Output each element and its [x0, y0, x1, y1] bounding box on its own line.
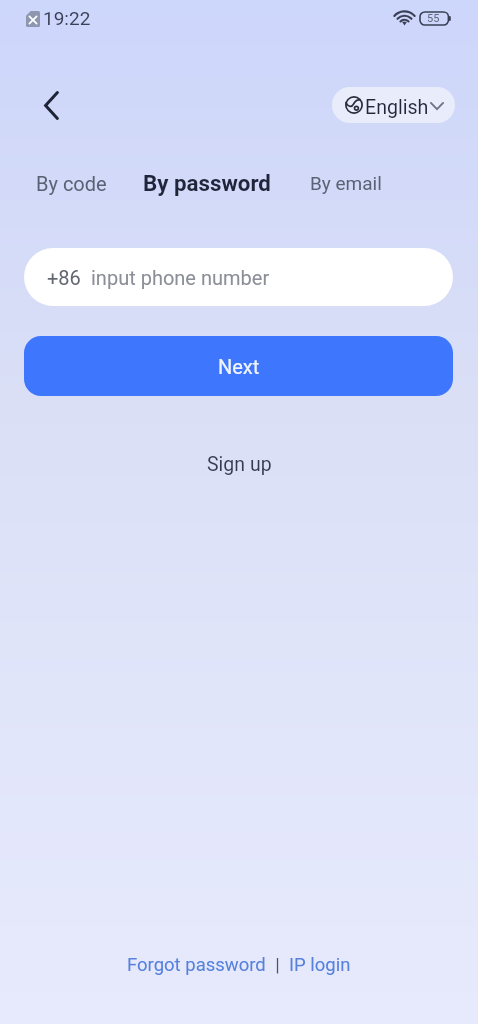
staticText: Sign up	[207, 453, 272, 476]
button[interactable]: English	[332, 87, 455, 123]
staticText: By password	[143, 170, 271, 196]
staticText: English	[365, 96, 429, 119]
button[interactable]: +86	[24, 248, 453, 306]
staticText: input phone number	[91, 266, 270, 289]
button[interactable]: IP login	[289, 954, 351, 976]
staticText: 55	[427, 12, 440, 25]
staticText: 19:22	[43, 7, 91, 29]
staticText: IP login	[289, 954, 351, 976]
staticText: |	[266, 954, 289, 976]
staticText: Next	[218, 355, 260, 378]
button[interactable]: By password	[135, 169, 279, 197]
button[interactable]: By code	[28, 169, 115, 197]
button[interactable]: By email	[302, 169, 390, 197]
staticText: By email	[310, 172, 382, 194]
button[interactable]: Forgot password	[127, 954, 266, 976]
button[interactable]: Sign up	[197, 449, 282, 480]
button[interactable]: Next	[24, 336, 453, 396]
staticText: +86	[47, 266, 81, 289]
button[interactable]: Back	[29, 83, 73, 127]
staticText: By code	[36, 172, 107, 195]
staticText: Forgot password	[127, 954, 266, 976]
